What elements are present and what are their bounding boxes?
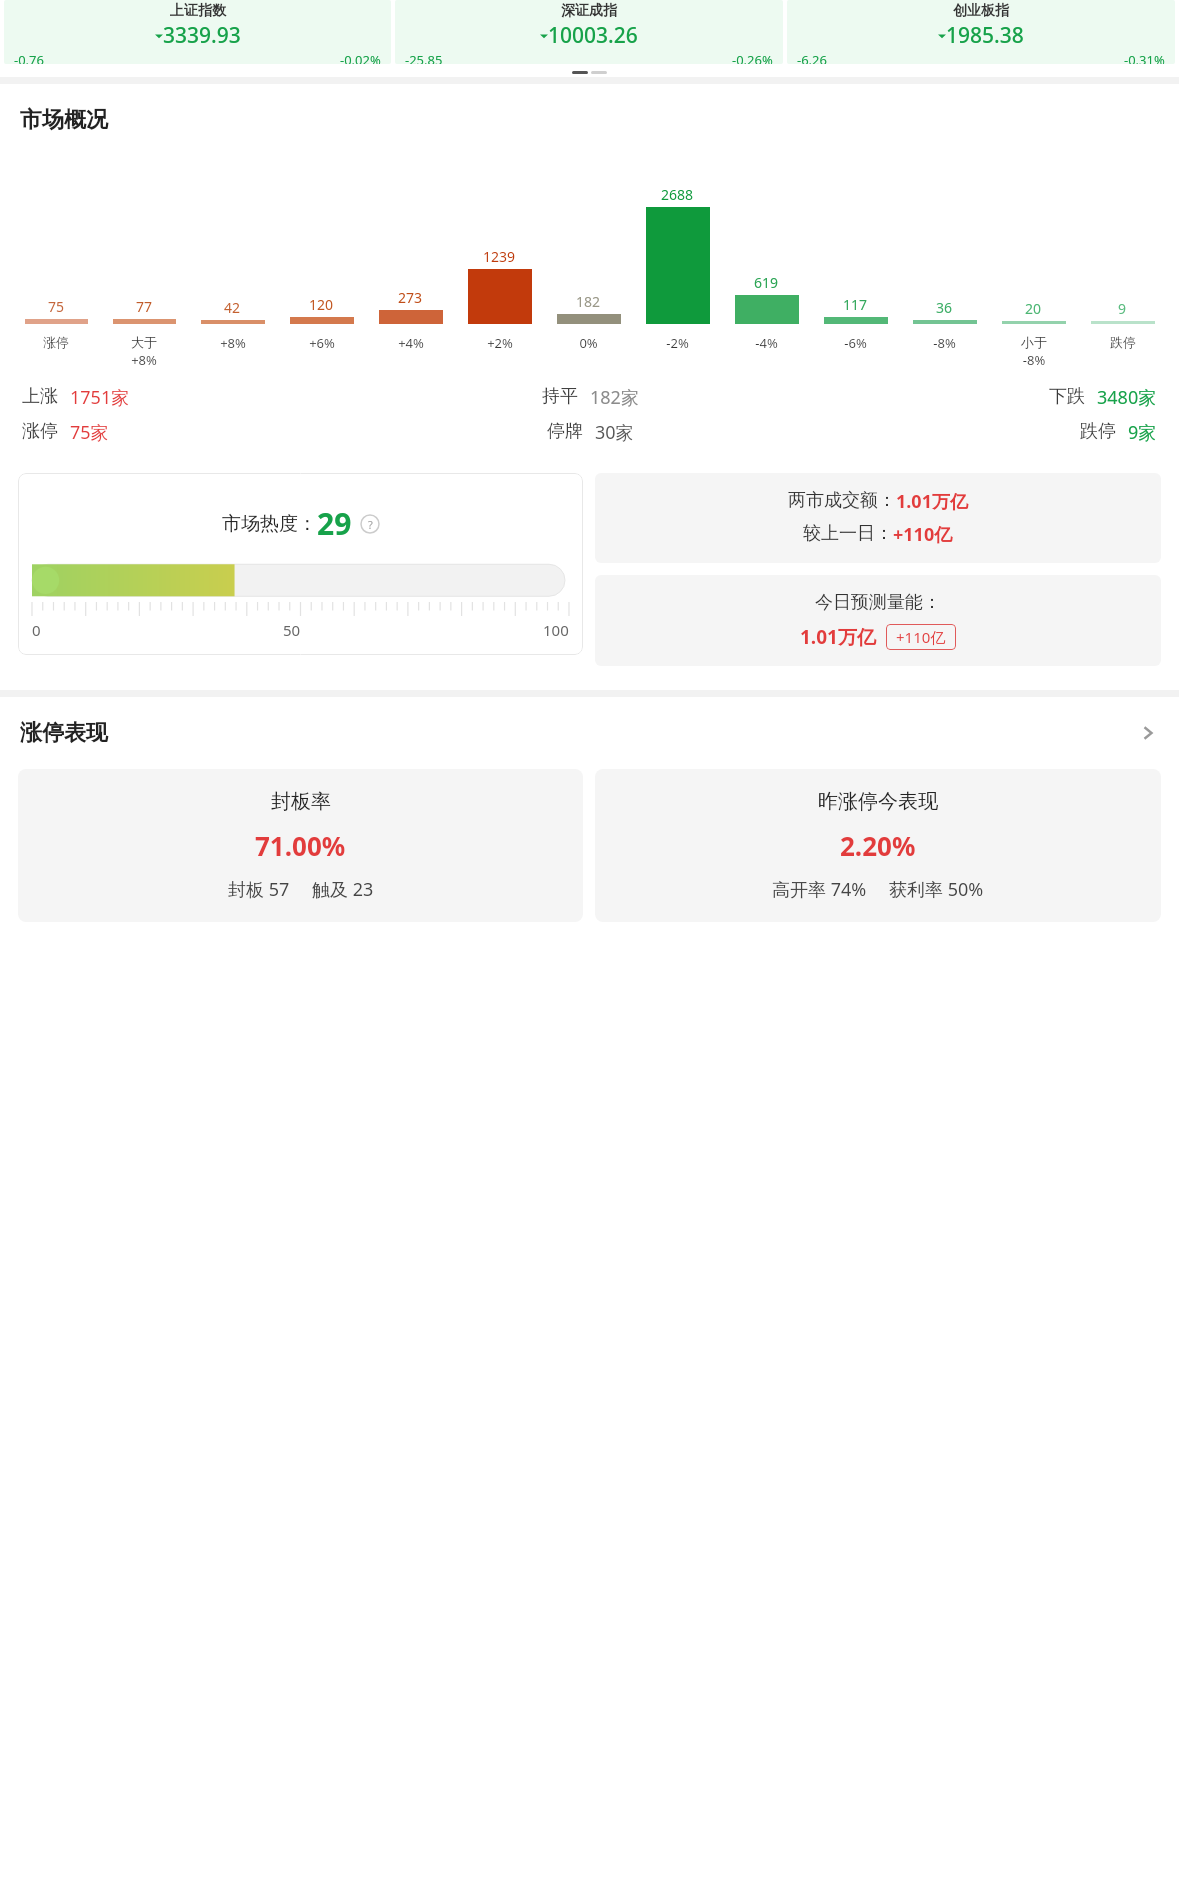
staticText: 今日预测量能：	[815, 591, 941, 614]
staticText: 30家	[595, 420, 634, 445]
staticText: 1751家	[70, 385, 130, 410]
staticText: 50	[283, 620, 301, 640]
staticText: 触及 23	[312, 877, 374, 902]
staticText: 10003.26	[548, 21, 638, 50]
staticText: 封板 57	[228, 877, 290, 902]
staticText: 涨停	[43, 334, 69, 350]
staticText: 涨停表现	[20, 719, 108, 747]
staticText: 100	[543, 620, 569, 640]
staticText: 117	[843, 295, 868, 314]
staticText: 182家	[590, 385, 639, 410]
staticText: 0	[32, 620, 41, 640]
staticText: 0%	[579, 334, 598, 352]
staticText: +2%	[487, 334, 513, 352]
staticText: -0.02%	[340, 51, 381, 64]
staticText: 75	[48, 297, 65, 316]
staticText: 1.01万亿	[800, 624, 876, 650]
staticText: -6.26	[797, 51, 827, 64]
staticText: 封板率	[271, 789, 331, 814]
staticText: +6%	[309, 334, 335, 352]
staticText: 市场概况	[20, 106, 108, 134]
button[interactable]: 创业板指	[787, 0, 1175, 64]
staticText: 36	[936, 298, 953, 317]
staticText: -0.26%	[732, 51, 773, 64]
staticText: 上涨	[22, 385, 58, 408]
button[interactable]: 封板率	[18, 769, 583, 922]
staticText: 下跌	[1049, 385, 1085, 408]
button[interactable]: 说明	[360, 514, 380, 534]
staticText: 深证成指	[561, 2, 617, 20]
button[interactable]: 市场热度：	[18, 473, 583, 655]
staticText: 29	[317, 503, 352, 544]
button[interactable]: 今日预测量能：	[595, 575, 1161, 666]
staticText: 2688	[661, 185, 694, 204]
staticText: 2.20%	[840, 828, 916, 863]
staticText: 619	[754, 273, 779, 292]
staticText: 9家	[1128, 420, 1157, 445]
staticText: 1.01万亿	[896, 489, 968, 514]
staticText: 3480家	[1097, 385, 1157, 410]
button[interactable]: 昨涨停今表现	[595, 769, 1161, 922]
button[interactable]: 涨停表现	[20, 719, 1159, 747]
staticText: 上证指数	[170, 2, 226, 20]
staticText: 77	[136, 297, 153, 316]
button[interactable]: 两市成交额：	[595, 473, 1161, 563]
staticText: 较上一日：	[803, 522, 893, 545]
other: 更多	[1137, 722, 1159, 744]
staticText: 120	[309, 295, 334, 314]
staticText: 跌停	[1080, 420, 1116, 443]
staticText: -0.31%	[1124, 51, 1165, 64]
staticText: 182	[576, 292, 601, 311]
staticText: -0.76	[14, 51, 44, 64]
button[interactable]: 上证指数	[4, 0, 391, 64]
staticText: 大于 +8%	[131, 334, 157, 369]
staticText: 71.00%	[255, 828, 346, 863]
staticText: -2%	[666, 334, 689, 352]
staticText: 1985.38	[946, 21, 1024, 50]
staticText: -6%	[844, 334, 867, 352]
staticText: +8%	[220, 334, 246, 352]
staticText: 市场热度：	[222, 512, 317, 536]
staticText: +110亿	[896, 627, 946, 647]
staticText: 20	[1025, 299, 1042, 318]
staticText: 跌停	[1110, 334, 1136, 350]
staticText: 9	[1118, 299, 1127, 318]
staticText: 两市成交额：	[788, 489, 896, 512]
staticText: 创业板指	[953, 2, 1009, 20]
staticText: 停牌	[547, 420, 583, 443]
staticText: +4%	[398, 334, 424, 352]
staticText: 75家	[70, 420, 109, 445]
staticText: 昨涨停今表现	[818, 789, 938, 814]
staticText: -8%	[933, 334, 956, 352]
staticText: 273	[398, 288, 423, 307]
staticText: 高开率 74%	[772, 877, 867, 902]
staticText: -4%	[755, 334, 778, 352]
staticText: 涨停	[22, 420, 58, 443]
staticText: 持平	[542, 385, 578, 408]
staticText: 42	[224, 298, 241, 317]
staticText: 小于 -8%	[1021, 334, 1047, 369]
staticText: -25.85	[405, 51, 443, 64]
staticText: 1239	[483, 247, 516, 266]
button[interactable]: 深证成指	[395, 0, 783, 64]
staticText: 3339.93	[163, 21, 241, 50]
staticText: 获利率 50%	[889, 877, 984, 902]
staticText: +110亿	[893, 522, 953, 547]
staticText: ?	[368, 517, 373, 532]
